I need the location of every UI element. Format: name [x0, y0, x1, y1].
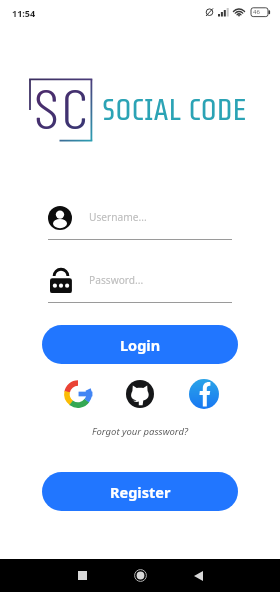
staticText: Password...	[89, 273, 144, 287]
staticText: Register	[110, 482, 171, 502]
button[interactable]: Sign in with GitHub	[126, 380, 154, 408]
staticText: 46	[253, 8, 260, 16]
staticText: Forgot your password?	[0, 425, 280, 438]
button[interactable]: Sign in with Google	[64, 380, 92, 408]
button[interactable]: Login	[42, 325, 238, 364]
button[interactable]: Sign in with Facebook	[189, 379, 219, 409]
staticText: Login	[120, 335, 161, 355]
staticText: SOCIAL CODE	[102, 93, 247, 127]
button[interactable]: Username...	[48, 205, 232, 240]
button[interactable]: Back	[176, 559, 220, 592]
staticText: Username...	[89, 210, 147, 224]
button[interactable]: Register	[42, 472, 238, 511]
button[interactable]: Forgot your password?	[0, 425, 280, 441]
button[interactable]: Password...	[48, 268, 232, 303]
staticText: 11:54	[12, 7, 36, 19]
staticText: SC	[34, 75, 92, 139]
button[interactable]: Recents	[60, 559, 104, 592]
button[interactable]: Home	[118, 559, 162, 592]
